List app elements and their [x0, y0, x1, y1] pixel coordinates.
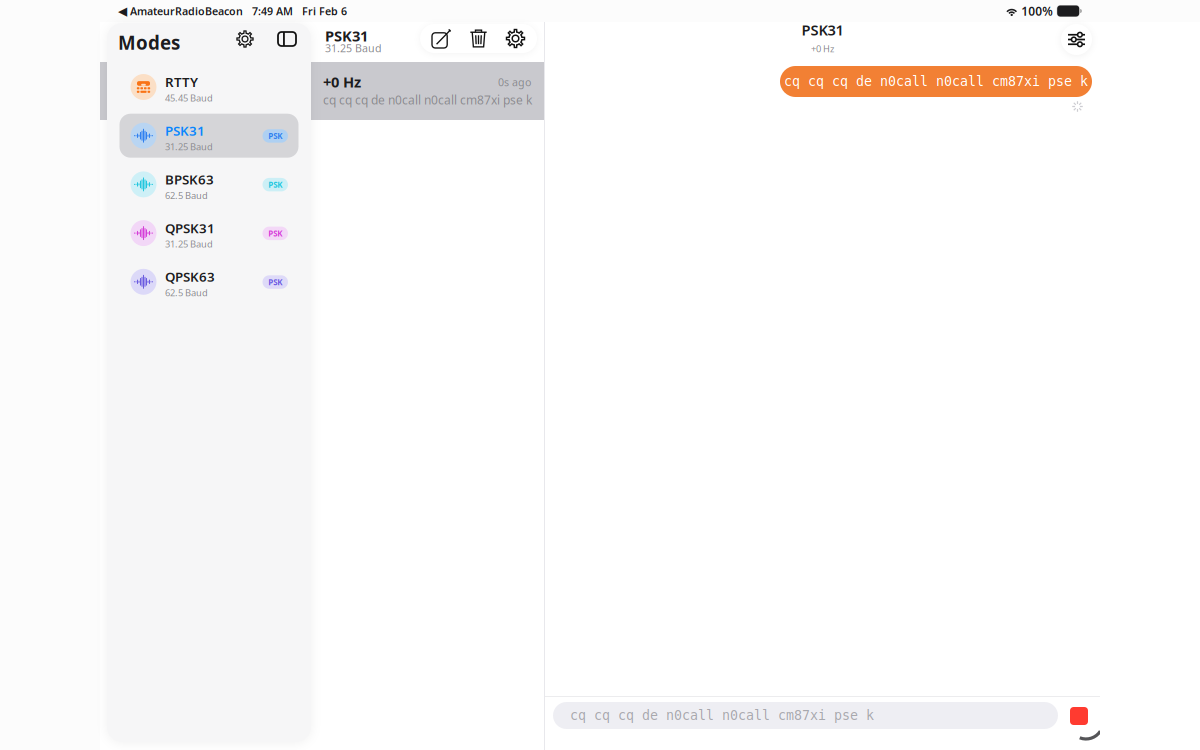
staticText: 45.45 Baud [165, 92, 213, 104]
staticText: 100% [1021, 3, 1053, 19]
button[interactable]: QPSK31 [107, 211, 311, 255]
staticText: PSK [268, 228, 282, 239]
button[interactable]: BPSK63 [107, 162, 311, 206]
staticText: Fri Feb 6 [302, 4, 347, 18]
staticText: 0s ago [498, 75, 531, 89]
staticText: PSK [268, 131, 282, 141]
staticText: +0 Hz [811, 42, 834, 55]
staticText: cq cq cq de n0call n0call cm87xi pse k [323, 92, 532, 108]
staticText: QPSK63 [165, 268, 215, 285]
button[interactable]: RTTY [107, 65, 311, 109]
staticText: 31.25 Baud [165, 140, 213, 153]
staticText: PSK31 [325, 26, 368, 45]
staticText: RTTY [165, 73, 198, 91]
staticText: cq cq cq de n0call n0call cm87xi pse k [570, 708, 874, 723]
staticText: Modes [118, 30, 180, 55]
staticText: AmateurRadioBeacon [127, 4, 243, 18]
staticText: 7:49 AM [252, 4, 293, 18]
staticText: PSK [268, 277, 282, 287]
button[interactable]: PSK31 [107, 114, 311, 158]
button[interactable]: QPSK63 [107, 260, 311, 304]
staticText: QPSK31 [165, 219, 215, 237]
button[interactable]: Settings [231, 25, 259, 53]
staticText: 31.25 Baud [325, 41, 382, 55]
staticText: ◀ [118, 4, 127, 18]
staticText: 62.5 Baud [165, 189, 208, 201]
staticText: 62.5 Baud [165, 286, 208, 299]
staticText: PSK [268, 179, 282, 190]
staticText: +0 Hz [323, 72, 361, 91]
staticText: 31.25 Baud [165, 238, 213, 250]
button[interactable]: +0 Hz [323, 72, 361, 91]
staticText: PSK31 [801, 20, 843, 39]
button[interactable]: Stop transmitting [1070, 707, 1088, 725]
button[interactable]: Toggle Sidebar [273, 25, 301, 53]
button[interactable]: Settings [1061, 24, 1092, 55]
button[interactable]: Message actions [420, 24, 537, 53]
staticText: BPSK63 [165, 170, 214, 188]
staticText: PSK31 [165, 122, 205, 139]
staticText: cq cq cq de n0call n0call cm87xi pse k [784, 74, 1088, 89]
